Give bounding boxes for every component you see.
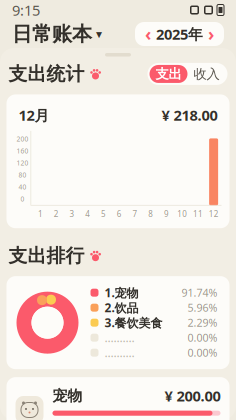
staticText: 12月	[18, 105, 49, 125]
staticText: 8	[148, 209, 153, 219]
staticText: 160	[16, 146, 28, 155]
staticText: 支出排行	[8, 244, 84, 267]
staticText: ..........	[104, 330, 134, 346]
staticText: 2	[54, 209, 59, 219]
staticText: 9:15	[12, 0, 40, 20]
staticText: 0.00%	[187, 331, 217, 345]
staticText: 120	[16, 158, 28, 167]
staticText: 2025年	[156, 24, 203, 44]
staticText: ›	[208, 22, 214, 45]
staticText: 9	[164, 209, 169, 219]
staticText: 支出	[155, 66, 181, 82]
staticText: 11	[193, 209, 203, 219]
staticText: 0	[20, 194, 24, 203]
button[interactable]: 上一年	[140, 25, 156, 43]
staticText: 200	[16, 134, 28, 143]
staticText: 2.饮品	[104, 300, 138, 316]
staticText: ‹	[145, 22, 151, 45]
staticText: 12	[209, 209, 219, 219]
staticText: ¥ 218.00	[161, 105, 217, 125]
button[interactable]: 宠物	[6, 377, 229, 420]
staticText: 5	[101, 209, 106, 219]
staticText: 0.00%	[187, 346, 217, 360]
staticText: 日常账本	[12, 22, 92, 46]
staticText: 7	[132, 209, 137, 219]
staticText: 1	[38, 209, 43, 219]
staticText: 40	[18, 182, 26, 191]
staticText: 5.96%	[187, 301, 217, 315]
staticText: 3	[69, 209, 74, 219]
staticText: 3.餐饮美食	[104, 315, 162, 331]
button[interactable]: 支出	[149, 65, 187, 83]
staticText: ¥ 200.00	[164, 386, 220, 406]
button[interactable]: 收入	[187, 65, 225, 83]
staticText: 6	[117, 209, 122, 219]
staticText: 4	[85, 209, 90, 219]
staticText: 收入	[193, 66, 219, 82]
staticText: 宠物	[52, 387, 82, 405]
staticText: 91.74%	[181, 286, 217, 300]
staticText: ▾	[96, 27, 102, 41]
staticText: 1.宠物	[104, 285, 138, 301]
button[interactable]: 下一年	[203, 25, 219, 43]
staticText: 2.29%	[187, 316, 217, 330]
button[interactable]: 2025年	[156, 25, 203, 43]
button[interactable]: 日常账本	[12, 22, 102, 46]
staticText: 支出统计	[8, 62, 84, 85]
staticText: ..........	[104, 345, 134, 361]
staticText: 10	[177, 209, 187, 219]
staticText: 80	[18, 170, 26, 179]
